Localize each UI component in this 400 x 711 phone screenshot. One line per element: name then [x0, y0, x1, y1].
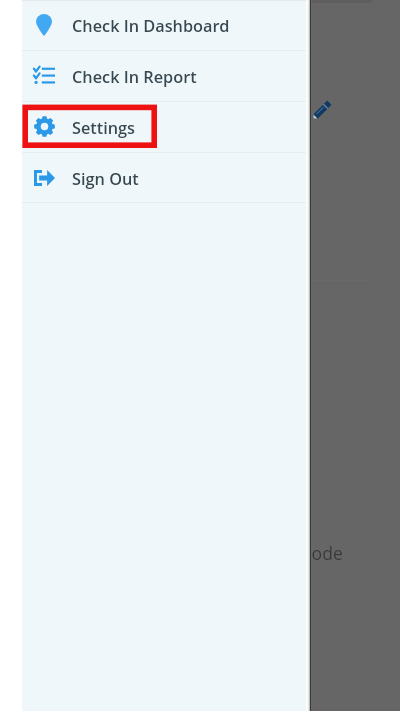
staticText: Check In Dashboard [72, 15, 230, 37]
button[interactable]: Check In Report [22, 50, 306, 101]
staticText: Settings [72, 117, 136, 139]
button[interactable]: Sign Out [22, 152, 306, 203]
button[interactable]: Settings [22, 101, 306, 152]
staticText: Check In Report [72, 66, 197, 88]
button[interactable]: Check In Dashboard [22, 0, 306, 50]
staticText: Scan code [260, 541, 343, 565]
button[interactable]: Edit [309, 98, 334, 123]
staticText: Sign Out [72, 168, 139, 190]
